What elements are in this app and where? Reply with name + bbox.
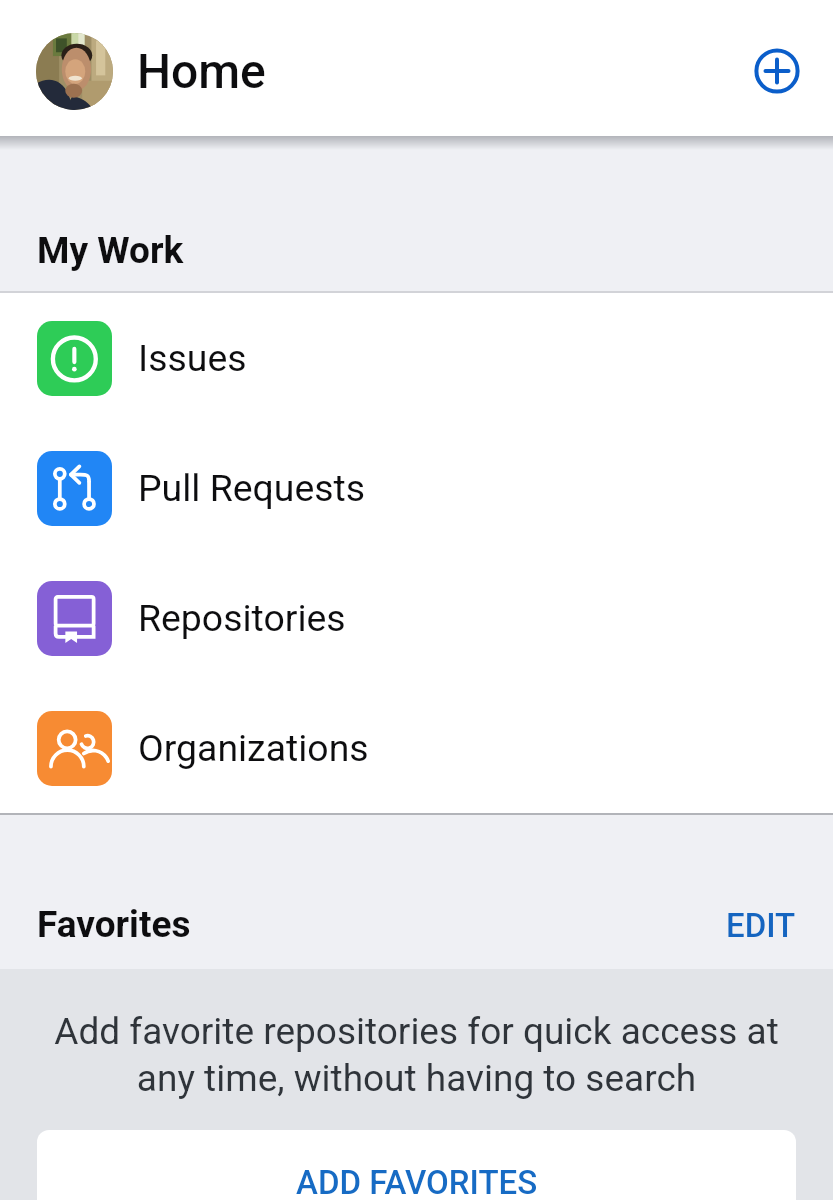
staticText: Pull Requests [138, 466, 366, 510]
button[interactable]: Create new [745, 39, 809, 103]
staticText: ADD FAVORITES [296, 1163, 538, 1200]
button[interactable]: Organizations [0, 683, 833, 813]
button[interactable]: EDIT [726, 906, 796, 946]
staticText: EDIT [726, 906, 796, 945]
button[interactable]: ADD FAVORITES [37, 1130, 796, 1200]
staticText: Add favorite repositories for quick acce… [40, 1010, 793, 1100]
button[interactable]: Profile [36, 33, 113, 110]
button[interactable]: Pull Requests [0, 423, 833, 553]
button[interactable]: Issues [0, 293, 833, 423]
staticText: Issues [138, 336, 247, 380]
staticText: Home [137, 43, 266, 99]
staticText: Organizations [138, 726, 369, 770]
staticText: Favorites [37, 903, 191, 946]
button[interactable]: Repositories [0, 553, 833, 683]
staticText: Repositories [138, 596, 346, 640]
staticText: My Work [37, 229, 184, 272]
